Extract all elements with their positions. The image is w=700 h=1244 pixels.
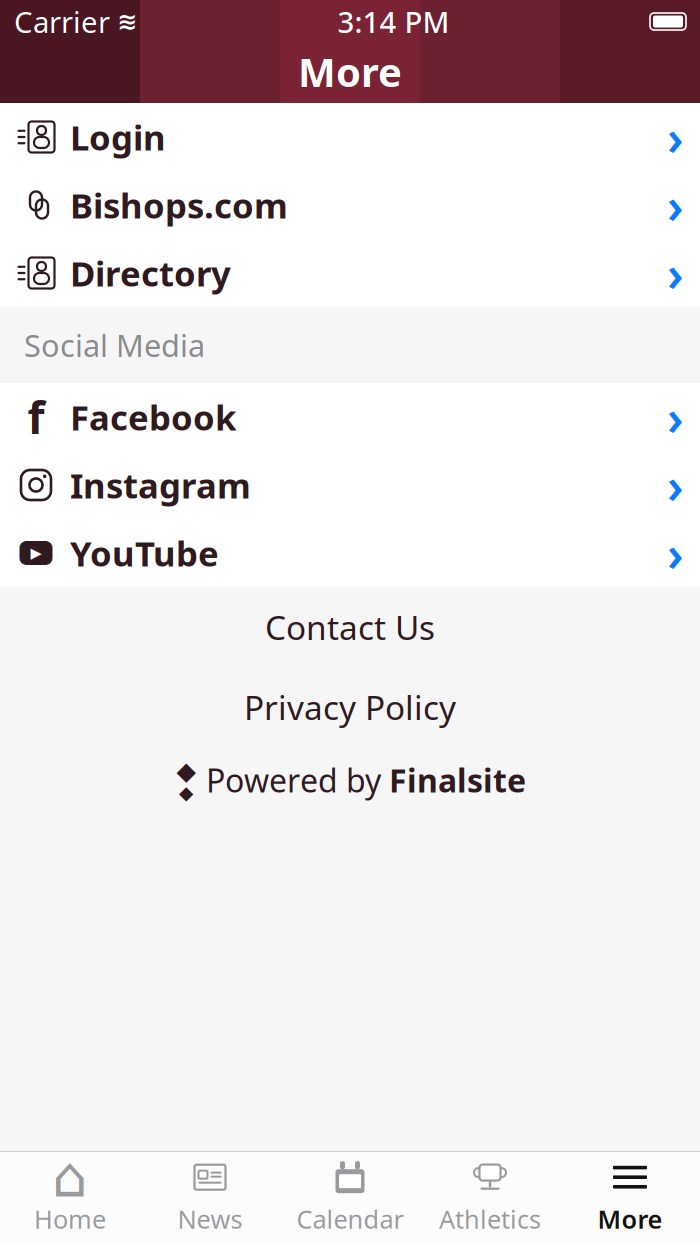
staticText: Finalsite — [389, 759, 526, 801]
staticText: Social Media — [24, 325, 205, 365]
button[interactable]: Calendar — [280, 1152, 420, 1244]
button[interactable]: Privacy Policy — [0, 667, 700, 747]
staticText: Instagram — [70, 462, 251, 508]
button[interactable]: Contact Us — [0, 587, 700, 667]
staticText: 3:14 PM — [337, 2, 449, 41]
staticText: ≋ — [117, 8, 137, 35]
staticText: Home — [34, 1202, 106, 1236]
staticText: YouTube — [70, 530, 219, 576]
staticText: Contact Us — [265, 605, 435, 649]
staticText: Bishops.com — [70, 182, 288, 228]
staticText: Calendar — [296, 1202, 403, 1236]
staticText: › — [667, 521, 684, 585]
staticText: Powered by — [206, 759, 381, 801]
staticText: › — [667, 453, 684, 517]
button[interactable]: More — [560, 1152, 700, 1244]
staticText: More — [597, 1202, 662, 1236]
staticText: ◆ — [179, 782, 193, 803]
button[interactable]: Athletics — [420, 1152, 560, 1244]
button[interactable]: ⌂ — [0, 1152, 140, 1244]
staticText: News — [177, 1202, 242, 1236]
staticText: f — [27, 388, 44, 446]
button[interactable]: Directory — [0, 239, 700, 307]
staticText: › — [667, 241, 684, 305]
staticText: ▶ — [30, 545, 41, 561]
staticText: Directory — [70, 250, 231, 296]
staticText: › — [667, 173, 684, 237]
staticText: Carrier — [14, 2, 110, 41]
staticText: More — [298, 45, 402, 98]
button[interactable]: Bishops.com — [0, 171, 700, 239]
staticText: › — [667, 105, 684, 169]
staticText: Login — [70, 114, 166, 160]
staticText: Athletics — [439, 1202, 541, 1236]
button[interactable]: ▶ — [0, 519, 700, 587]
staticText: › — [667, 385, 684, 449]
staticText: Facebook — [70, 394, 236, 440]
button[interactable]: ◆ — [0, 747, 700, 813]
staticText: ◆ — [176, 756, 195, 785]
button[interactable]: News — [140, 1152, 280, 1244]
button[interactable]: Instagram — [0, 451, 700, 519]
staticText: Privacy Policy — [244, 685, 456, 729]
button[interactable]: Login — [0, 103, 700, 171]
staticText: ⌂ — [52, 1145, 88, 1209]
button[interactable]: f — [0, 383, 700, 451]
